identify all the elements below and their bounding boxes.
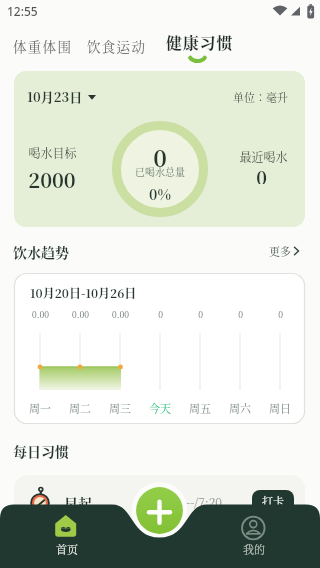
staticText: 2000 [28, 165, 76, 189]
staticText: 0 [158, 308, 163, 320]
staticText: 0 [238, 308, 243, 320]
button[interactable] [14, 475, 305, 568]
staticText: 周二 [69, 400, 91, 415]
staticText: 10月23日 [27, 87, 83, 106]
staticText: 每日习惯 [13, 441, 69, 461]
button[interactable]: 饮食运动 [0, 0, 60, 19]
staticText: 周日 [269, 400, 291, 415]
staticText: 更多 [269, 243, 291, 259]
staticText: 12:55 [7, 3, 38, 19]
staticText: 饮水趋势 [13, 242, 69, 262]
staticText: 0.00 [32, 308, 49, 320]
button[interactable] [47, 508, 87, 560]
staticText: 0.00 [112, 308, 129, 320]
staticText: 已喝水总量 [135, 164, 185, 178]
button[interactable]: 更多 [269, 243, 300, 259]
button[interactable]: 健康习惯 [0, 0, 68, 23]
staticText: 周三 [109, 400, 131, 415]
staticText: 早起 [64, 493, 92, 513]
staticText: 0 [278, 308, 283, 320]
staticText: 周五 [189, 400, 211, 415]
staticText: 周六 [229, 400, 251, 415]
button[interactable] [233, 508, 273, 560]
button[interactable] [136, 487, 183, 534]
button[interactable]: 体重体围 [0, 0, 60, 19]
staticText: 0 [198, 308, 203, 320]
staticText: --/7:20 [186, 493, 223, 510]
staticText: 我的 [243, 541, 265, 555]
staticText: 0.00 [72, 308, 89, 320]
staticText: 打卡 [262, 493, 284, 509]
button[interactable]: 10月23日 [27, 87, 96, 106]
staticText: 0% [149, 184, 171, 202]
staticText: 周一 [29, 400, 51, 415]
staticText: 0 [153, 141, 167, 167]
staticText: 首页 [56, 541, 78, 555]
staticText: 喝水目标 [28, 144, 77, 159]
staticText: 单位：毫升 [233, 89, 288, 105]
staticText: 最近喝水 [239, 148, 288, 163]
staticText: 0 [256, 164, 267, 184]
staticText: 今天 [149, 400, 171, 415]
button[interactable]: 打卡 [252, 490, 294, 514]
staticText: 10月20日-10月26日 [30, 284, 137, 301]
